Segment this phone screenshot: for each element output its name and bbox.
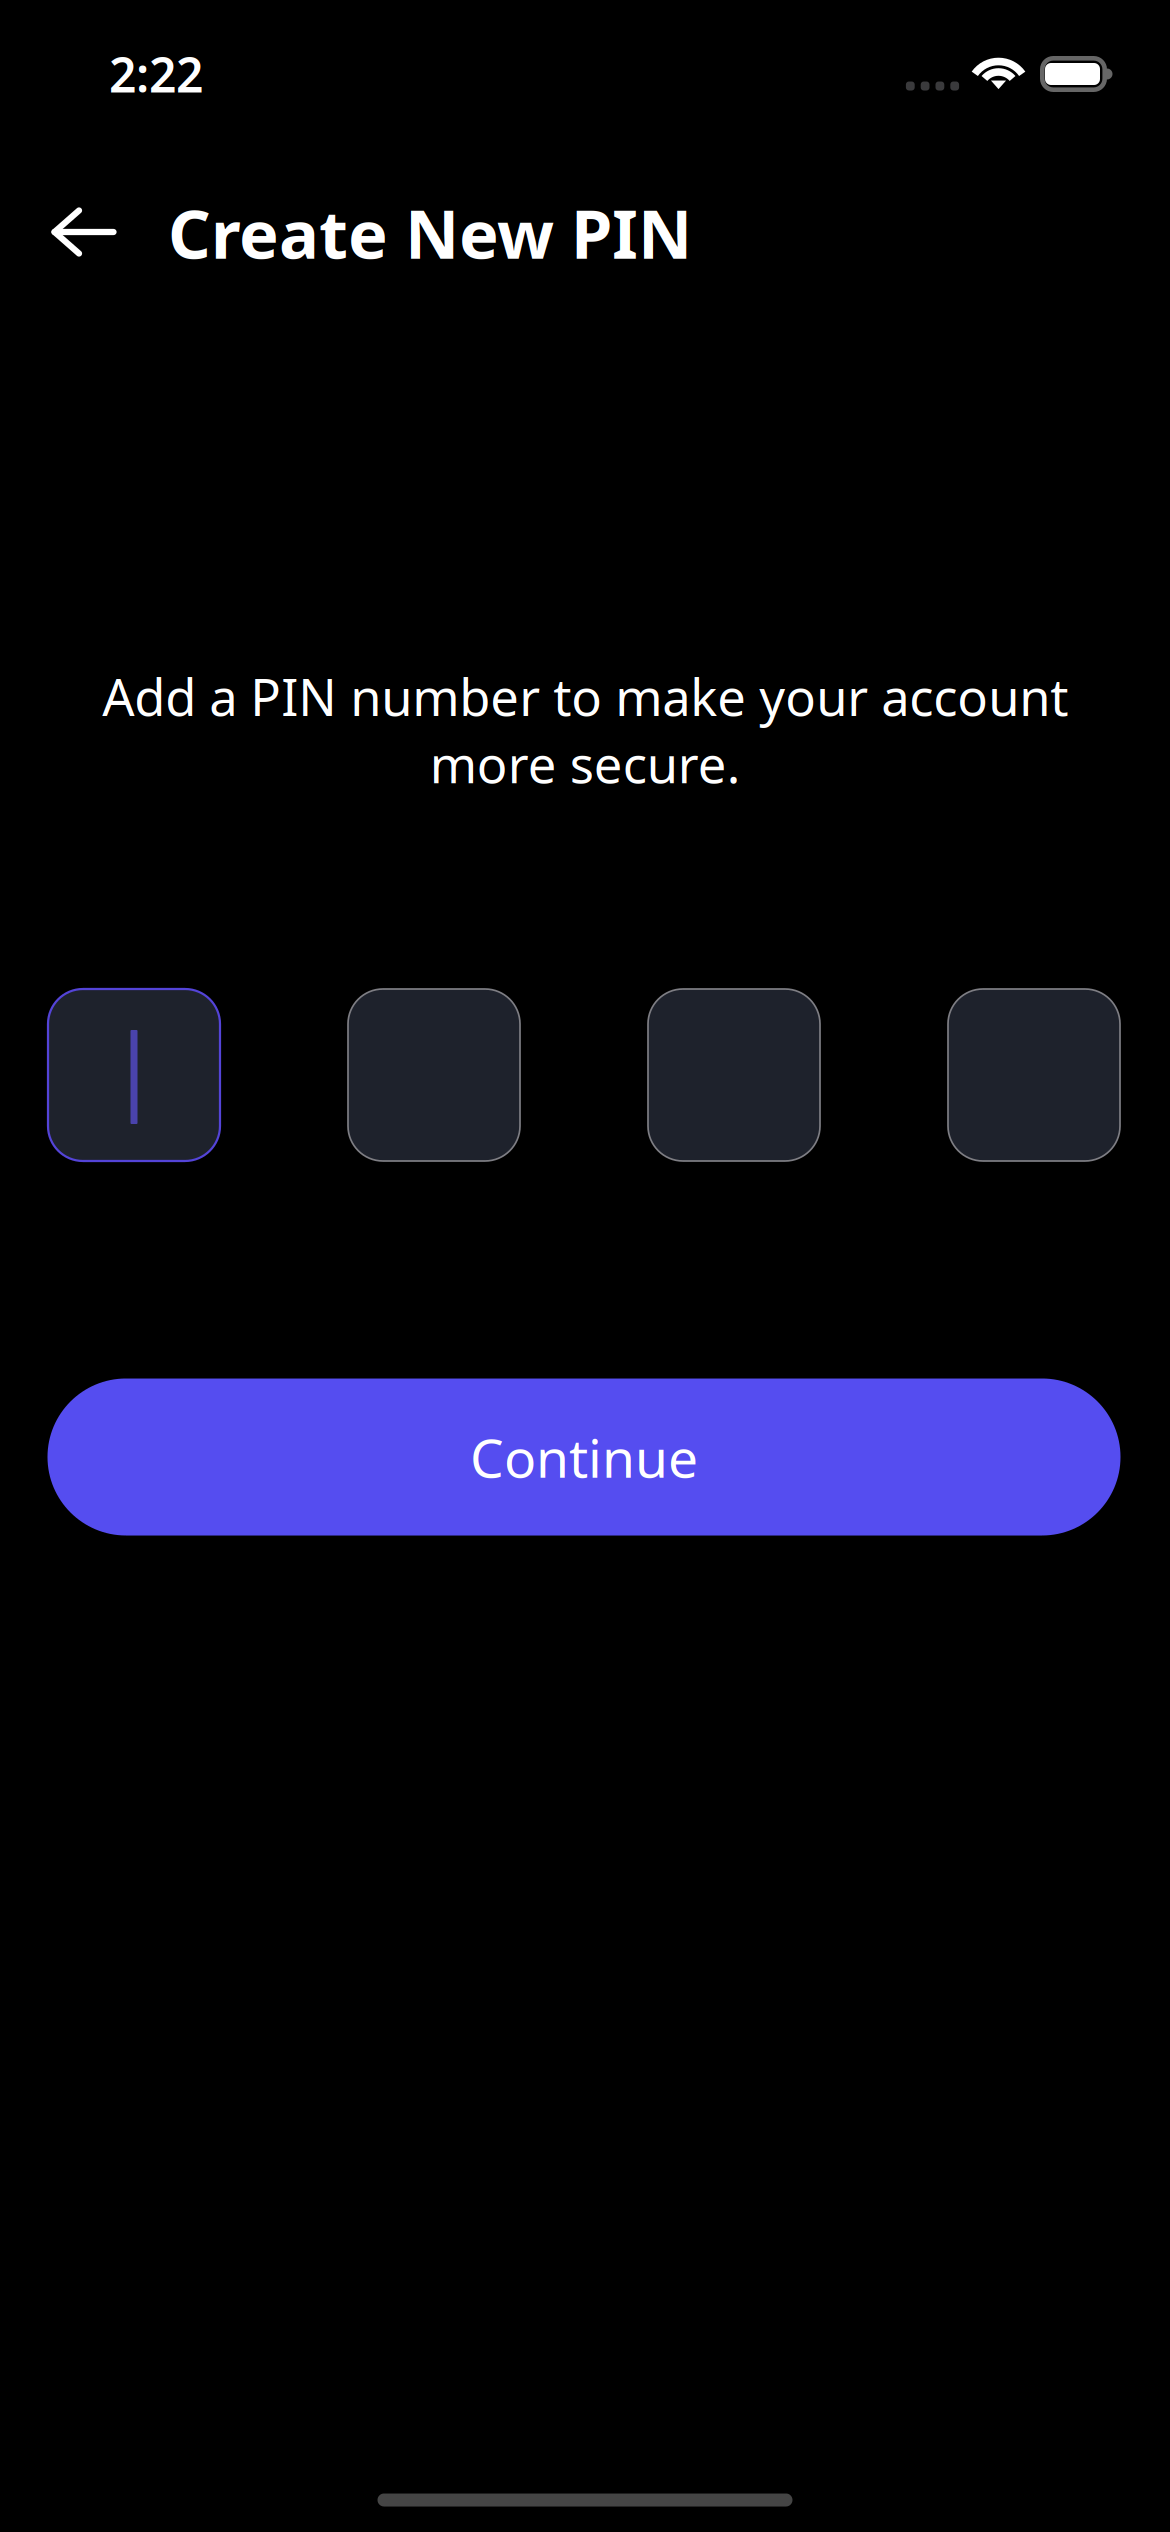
button[interactable]: PIN digit 3 xyxy=(648,989,820,1161)
button[interactable]: Back xyxy=(20,173,148,291)
staticText: Continue xyxy=(470,1422,698,1492)
button[interactable]: PIN digit 2 xyxy=(348,989,520,1161)
button[interactable]: PIN digit 1 xyxy=(48,989,220,1161)
staticText: Create New PIN xyxy=(168,189,692,277)
staticText: 2:22 xyxy=(109,42,203,106)
staticText: Add a PIN number to make your account mo… xyxy=(102,663,1068,797)
button[interactable]: PIN digit 4 xyxy=(948,989,1120,1161)
button[interactable]: Continue xyxy=(47,1378,1120,1535)
